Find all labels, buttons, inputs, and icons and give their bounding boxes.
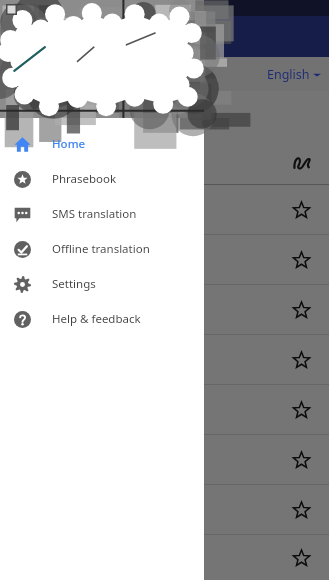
button[interactable]: Star: [287, 246, 315, 274]
staticText: Home: [52, 136, 86, 152]
staticText: Settings: [52, 276, 96, 292]
button[interactable]: Handwriting: [289, 150, 315, 176]
staticText: English: [267, 66, 310, 83]
button[interactable]: reich an Ant...: [0, 235, 329, 284]
button[interactable]: Star: [287, 296, 315, 324]
staticText: ased that you...: [16, 211, 106, 228]
button[interactable]: Home: [0, 126, 204, 161]
staticText: xidants, prot...: [16, 261, 101, 278]
staticText: t pockets or...: [16, 311, 94, 328]
button[interactable]: English: [0, 57, 329, 91]
button[interactable]: SMS translation: [0, 196, 204, 231]
button[interactable]: wir freuen uns...: [0, 185, 329, 234]
staticText: SMS translation: [52, 206, 137, 222]
button[interactable]: Offline translation: [0, 231, 204, 266]
button[interactable]: Star: [287, 496, 315, 524]
button[interactable]: Star: [287, 346, 315, 374]
button[interactable]: hen stecken...: [0, 285, 329, 334]
button[interactable]: Star: [0, 435, 329, 484]
button[interactable]: Star: [287, 446, 315, 474]
staticText: Offline translation: [52, 241, 150, 257]
button[interactable]: Settings: [0, 266, 204, 301]
button[interactable]: Phrasebook: [0, 161, 204, 196]
button[interactable]: bekommen S...: [0, 485, 329, 534]
button[interactable]: Gras.: [0, 535, 329, 580]
staticText: Phrasebook: [52, 171, 117, 187]
button[interactable]: Star: [287, 396, 315, 424]
staticText: reich an Ant...: [16, 241, 97, 258]
button[interactable]: Star: [287, 544, 315, 572]
button[interactable]: Star: [0, 385, 329, 434]
staticText: hen stecken...: [16, 291, 97, 308]
button[interactable]: Star: [0, 335, 329, 384]
button[interactable]: Help & feedback: [0, 301, 204, 336]
button[interactable]: Star: [287, 196, 315, 224]
staticText: Help & feedback: [52, 311, 141, 327]
staticText: wir freuen uns...: [16, 191, 111, 208]
